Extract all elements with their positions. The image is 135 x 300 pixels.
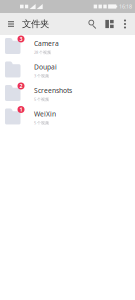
staticText: 16:18	[119, 3, 132, 10]
staticText: 3	[19, 35, 22, 42]
staticText: 3 个视频	[34, 73, 49, 78]
staticText: 5 个视频	[34, 97, 49, 102]
staticText: 5 个视频	[34, 120, 49, 125]
button[interactable]: 3	[0, 35, 135, 58]
staticText: 1	[19, 106, 22, 113]
staticText: 2	[19, 82, 22, 89]
button[interactable]: View mode	[101, 13, 118, 35]
button[interactable]: 1	[0, 105, 135, 129]
button[interactable]: Search	[84, 13, 101, 35]
staticText: Camera	[34, 39, 59, 48]
staticText: Doupai	[34, 62, 57, 71]
button[interactable]: Doupai	[0, 58, 135, 82]
button[interactable]: 2	[0, 82, 135, 105]
staticText: 28 个视频	[34, 50, 51, 55]
staticText: Screenshots	[34, 86, 72, 95]
staticText: 文件夹	[22, 18, 49, 30]
button[interactable]: More options	[118, 13, 132, 35]
staticText: WeiXin	[34, 109, 56, 118]
button[interactable]: Menu	[4, 13, 18, 35]
